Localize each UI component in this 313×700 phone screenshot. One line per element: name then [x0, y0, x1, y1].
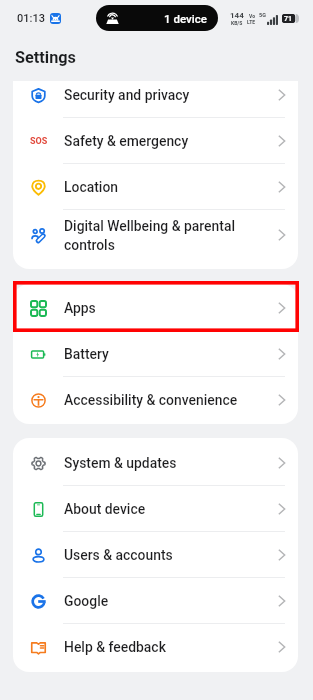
staticText: Settings — [15, 48, 76, 67]
staticText: SOS — [30, 136, 48, 147]
button[interactable]: Help & feedback — [13, 624, 298, 670]
staticText: Battery — [64, 346, 265, 362]
staticText: About device — [64, 501, 265, 517]
staticText: Digital Wellbeing & parental controls — [64, 218, 265, 253]
button[interactable]: Google — [13, 578, 298, 624]
staticText: 144 — [230, 11, 244, 20]
staticText: 1 device — [164, 12, 207, 25]
button[interactable]: Security and privacy — [13, 81, 298, 118]
staticText: Apps — [64, 300, 265, 316]
staticText: Users & accounts — [64, 547, 265, 563]
staticText: Location — [64, 179, 265, 195]
button[interactable]: SOS — [13, 118, 298, 164]
button[interactable]: Battery — [13, 331, 298, 377]
staticText: KB/S — [231, 20, 243, 26]
button[interactable]: Apps — [13, 285, 298, 331]
button[interactable]: Digital Wellbeing & parental controls — [13, 210, 298, 260]
staticText: Google — [64, 593, 265, 609]
button[interactable]: Location — [13, 164, 298, 210]
staticText: Safety & emergency — [64, 133, 265, 149]
staticText: Security and privacy — [64, 87, 265, 103]
staticText: 71 — [284, 15, 293, 23]
button[interactable]: About device — [13, 486, 298, 532]
staticText: System & updates — [64, 455, 265, 471]
staticText: Help & feedback — [64, 639, 265, 655]
button[interactable]: Users & accounts — [13, 532, 298, 578]
button[interactable]: System & updates — [13, 440, 298, 486]
staticText: Vo — [249, 13, 255, 19]
button[interactable]: Accessibility & convenience — [13, 377, 298, 423]
staticText: LTE — [247, 19, 256, 25]
other: 1 device connected — [96, 5, 218, 31]
staticText: 5G — [259, 12, 266, 18]
staticText: Accessibility & convenience — [64, 392, 265, 408]
staticText: 01:13 — [17, 12, 45, 25]
